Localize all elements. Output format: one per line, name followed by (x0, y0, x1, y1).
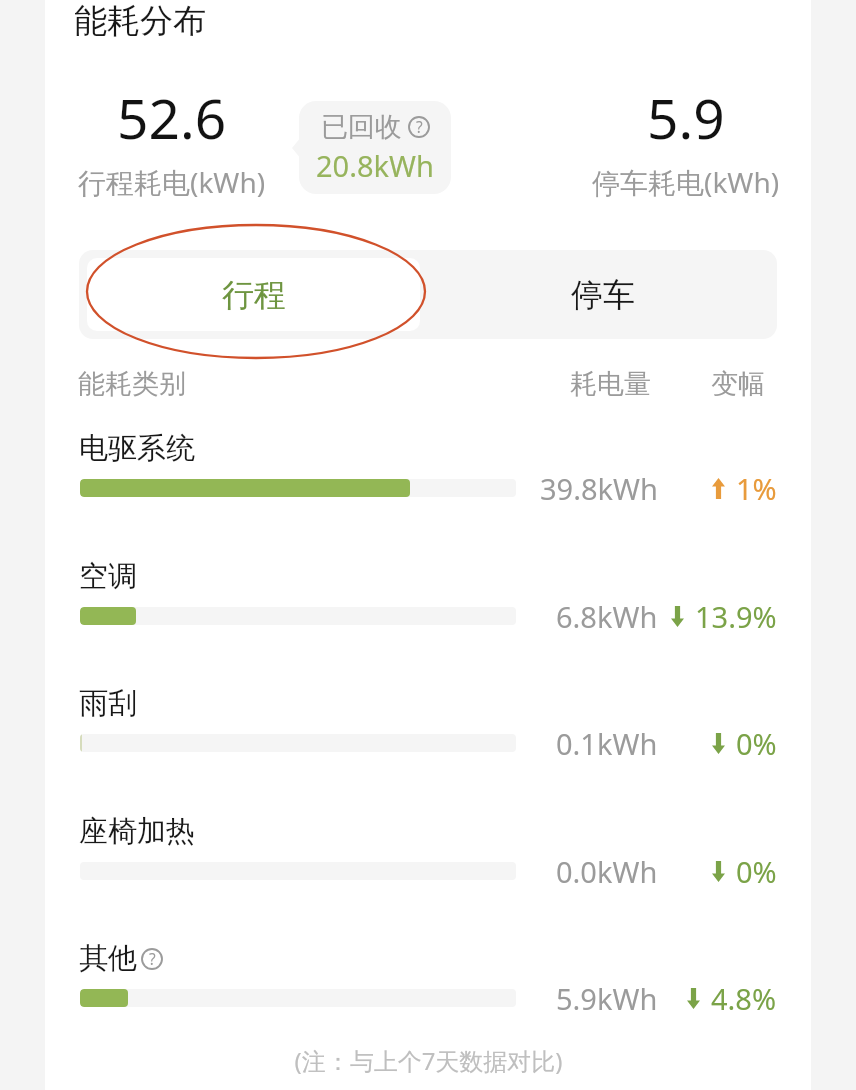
staticText: 能耗类别 (78, 367, 186, 401)
staticText: ? (416, 117, 423, 138)
button[interactable]: 雨刮 (0, 685, 856, 795)
staticText: 13.9% (695, 597, 777, 636)
staticText: 座椅加热 (79, 813, 195, 850)
staticText: 停车耗电(kWh) (592, 163, 780, 201)
staticText: ? (149, 949, 156, 970)
staticText: 0.0kWh (556, 852, 658, 891)
staticText: 4.8% (711, 979, 777, 1018)
staticText: 耗电量 (570, 367, 651, 401)
staticText: 变幅 (711, 367, 765, 401)
staticText: 0% (736, 724, 777, 763)
staticText: 行程 (222, 275, 286, 315)
staticText: 0% (736, 852, 777, 891)
staticText: 电驱系统 (79, 430, 195, 467)
staticText: 停车 (571, 275, 635, 315)
button[interactable]: 行程 (87, 258, 420, 331)
staticText: 1% (736, 469, 777, 508)
staticText: 6.8kWh (556, 597, 658, 636)
staticText: 行程耗电(kWh) (78, 163, 266, 201)
button[interactable]: 已回收 (299, 101, 451, 194)
staticText: 能耗分布 (74, 0, 206, 42)
staticText: 52.6 (117, 80, 227, 155)
staticText: 空调 (79, 558, 137, 595)
button[interactable]: 关于其他能耗的说明 (141, 948, 163, 970)
button[interactable]: 电驱系统 (0, 430, 856, 540)
button[interactable]: 关于已回收电量的说明 (408, 116, 430, 138)
staticText: (注：与上个7天数据对比) (294, 1044, 563, 1077)
staticText: 5.9 (647, 80, 725, 155)
button[interactable]: 停车 (428, 250, 777, 339)
staticText: 39.8kWh (540, 469, 658, 508)
button[interactable]: 其他 (0, 940, 856, 1050)
button[interactable]: 空调 (0, 558, 856, 668)
staticText: 5.9kWh (556, 979, 658, 1018)
staticText: 20.8kWh (316, 146, 434, 185)
staticText: 其他 (79, 940, 137, 977)
button[interactable]: 座椅加热 (0, 813, 856, 923)
staticText: 雨刮 (79, 685, 137, 722)
staticText: 已回收 (321, 110, 402, 144)
staticText: 0.1kWh (556, 724, 658, 763)
